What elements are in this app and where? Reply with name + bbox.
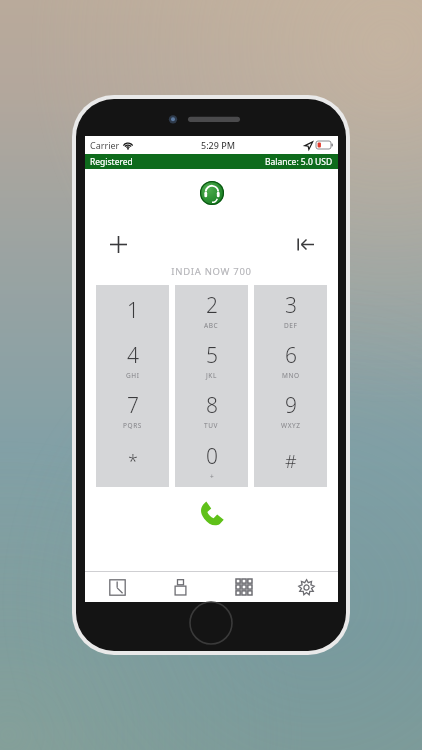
staticText: JKL: [206, 371, 218, 380]
staticText: *: [128, 449, 138, 474]
button[interactable]: Account: [200, 181, 224, 205]
button[interactable]: 5: [175, 335, 248, 385]
button[interactable]: Call: [192, 499, 232, 529]
staticText: TUV: [204, 421, 219, 430]
staticText: 4: [127, 341, 139, 370]
staticText: 9: [285, 391, 297, 420]
staticText: Registered: [90, 156, 133, 168]
button[interactable]: *: [96, 436, 169, 487]
button[interactable]: Backspace: [292, 231, 318, 257]
staticText: #: [285, 449, 297, 474]
staticText: PQRS: [123, 421, 143, 430]
staticText: GHI: [126, 371, 140, 380]
staticText: 0: [206, 442, 218, 471]
button[interactable]: 3: [254, 285, 327, 335]
staticText: WXYZ: [281, 421, 301, 430]
button[interactable]: 1: [96, 285, 169, 335]
button[interactable]: 0: [175, 436, 248, 487]
button[interactable]: 7: [96, 385, 169, 436]
staticText: 5: [206, 341, 218, 370]
button[interactable]: Home: [189, 601, 233, 645]
button[interactable]: 9: [254, 385, 327, 436]
staticText: 7: [127, 391, 139, 420]
staticText: MNO: [282, 371, 300, 380]
staticText: +: [210, 472, 215, 481]
staticText: INDIA NOW 700: [171, 265, 252, 278]
button[interactable]: 6: [254, 335, 327, 385]
button[interactable]: Add contact: [105, 231, 131, 257]
staticText: 5:29 PM: [201, 139, 235, 151]
button[interactable]: 8: [175, 385, 248, 436]
staticText: ABC: [204, 321, 219, 330]
staticText: 2: [206, 291, 218, 320]
staticText: Carrier: [90, 139, 120, 151]
button[interactable]: Keypad: [212, 572, 275, 602]
button[interactable]: 4: [96, 335, 169, 385]
staticText: 6: [285, 341, 297, 370]
button[interactable]: Registered: [85, 154, 338, 169]
button[interactable]: Settings: [275, 572, 338, 602]
staticText: 1: [127, 296, 139, 325]
staticText: DEF: [284, 321, 298, 330]
staticText: 8: [206, 391, 218, 420]
button[interactable]: #: [254, 436, 327, 487]
button[interactable]: Recents: [85, 572, 149, 602]
button[interactable]: Contacts: [149, 572, 212, 602]
button[interactable]: 2: [175, 285, 248, 335]
staticText: 3: [285, 291, 297, 320]
staticText: Balance: 5.0 USD: [265, 156, 333, 168]
